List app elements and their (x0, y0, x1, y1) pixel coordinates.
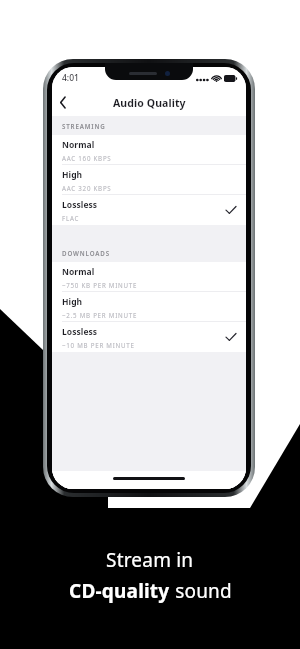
staticText: Normal (62, 266, 95, 278)
staticText: ~2.5 MB PER MINUTE (62, 311, 138, 319)
button[interactable]: Normal (52, 262, 246, 292)
staticText: AAC 160 KBPS (62, 154, 112, 162)
staticText: STREAMING (62, 122, 106, 130)
button[interactable]: Normal (52, 135, 246, 165)
staticText: High (62, 169, 83, 181)
staticText: Audio Quality (113, 96, 186, 110)
button[interactable]: High (52, 165, 246, 195)
staticText: AAC 320 KBPS (62, 184, 112, 192)
button[interactable]: Back (52, 89, 74, 116)
staticText: DOWNLOADS (62, 249, 110, 257)
staticText: High (62, 296, 83, 308)
button[interactable]: High (52, 292, 246, 322)
staticText: sound (170, 578, 232, 604)
staticText: Normal (62, 139, 95, 151)
button[interactable]: Lossless (52, 195, 246, 225)
staticText: Stream in (106, 547, 194, 573)
staticText: Lossless (62, 326, 98, 338)
staticText: 4:01 (62, 72, 79, 84)
staticText: CD-quality (69, 578, 170, 604)
staticText: Lossless (62, 199, 98, 211)
button[interactable]: Lossless (52, 322, 246, 352)
staticText: ~10 MB PER MINUTE (62, 341, 135, 349)
staticText: ~750 KB PER MINUTE (62, 281, 138, 289)
staticText: FLAC (62, 214, 80, 222)
